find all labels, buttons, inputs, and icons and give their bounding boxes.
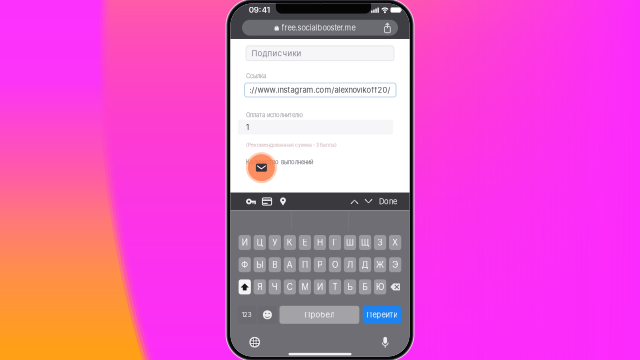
staticText: Э [392,260,398,270]
staticText: Я [257,282,262,292]
staticText: Ч [272,282,278,292]
staticText: П [302,260,308,270]
staticText: 1 [246,122,249,132]
staticText: Т [332,282,337,292]
staticText: К [287,237,293,247]
staticText: В [272,260,277,270]
staticText: 09:41 [249,5,270,15]
staticText: Ш [346,237,354,247]
button[interactable]: free.socialbooster.me [242,172,398,188]
staticText: Подписчики [251,48,301,58]
button[interactable]: Подписчики [246,173,394,187]
staticText: Ссылка [246,72,266,80]
staticText: Й [242,237,248,247]
staticText: А [287,260,293,270]
staticText: О [332,260,338,270]
staticText: У [272,237,277,247]
button[interactable]: ://www.instagram.com/alexnovikoff20/ [244,173,396,187]
staticText: Пробел [304,310,334,319]
staticText: Ж [376,260,384,270]
staticText: М [301,282,308,292]
staticText: Ь [347,282,352,292]
button[interactable]: 1 [242,173,397,187]
staticText: Оплата исполнителю [246,111,303,119]
staticText: Ц [257,237,263,247]
staticText: Н [317,237,323,247]
staticText: И [317,282,323,292]
staticText: Ы [256,260,263,270]
staticText: Г [332,237,337,247]
staticText: Количество выполнений [246,158,313,166]
staticText: З [378,237,383,247]
staticText: Б [362,282,367,292]
staticText: Е [302,237,307,247]
staticText: 123 [242,311,252,318]
button[interactable]: Messages [245,152,277,184]
staticText: С [287,282,293,292]
staticText: Ф [241,260,248,270]
staticText: Р [317,260,322,270]
staticText: Х [392,237,398,247]
staticText: Д [361,260,368,270]
staticText: Л [347,260,353,270]
staticText: free.socialbooster.me [281,23,355,32]
staticText: Done [379,197,397,206]
staticText: Перейти [366,310,397,319]
staticText: (Рекомендованная сумма - 3 балла) [246,142,337,148]
staticText: Ю [376,282,384,292]
staticText: ://www.instagram.com/alexnovikoff20/ [250,85,391,95]
staticText: Щ [361,237,369,247]
